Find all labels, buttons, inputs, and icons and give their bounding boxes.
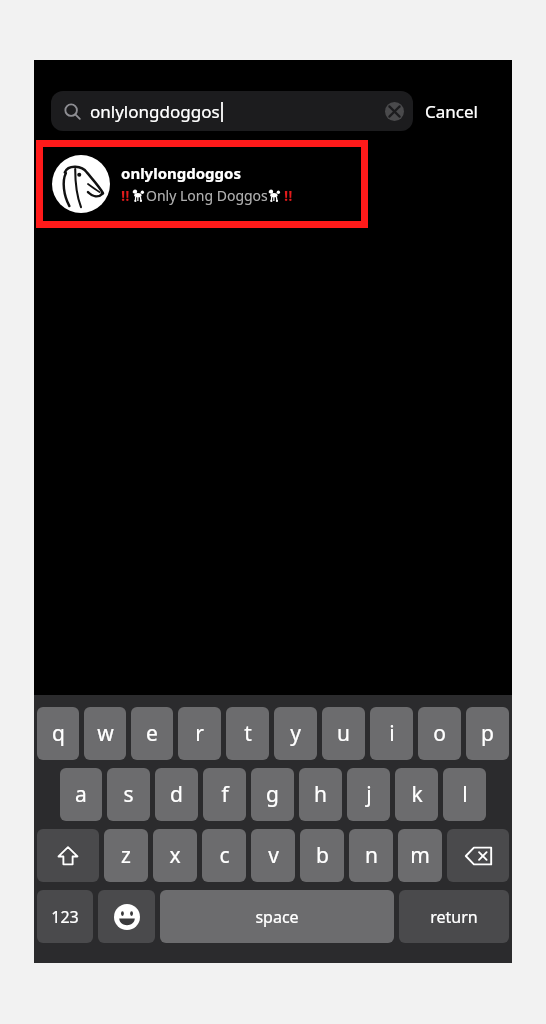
button[interactable]: v	[251, 829, 295, 882]
staticText: h	[314, 780, 327, 809]
staticText: d	[170, 780, 183, 809]
button[interactable]: c	[202, 829, 246, 882]
button[interactable]: s	[107, 768, 150, 821]
button[interactable]: f	[203, 768, 246, 821]
staticText: v	[268, 841, 279, 870]
staticText: Cancel	[425, 100, 478, 123]
staticText: s	[123, 780, 134, 809]
staticText: i	[389, 719, 395, 748]
button[interactable]: l	[443, 768, 486, 821]
staticText: j	[366, 780, 372, 809]
staticText: t	[244, 719, 252, 748]
button[interactable]: q	[37, 707, 79, 760]
staticText: f	[221, 780, 229, 809]
staticText: ‼	[121, 185, 130, 205]
button[interactable]: t	[226, 707, 269, 760]
staticText: n	[365, 841, 378, 870]
button[interactable]: Cancel	[425, 91, 478, 131]
staticText: x	[169, 841, 181, 870]
staticText: e	[146, 719, 158, 748]
staticText: w	[97, 719, 114, 748]
button[interactable]: x	[153, 829, 197, 882]
button[interactable]: Search	[51, 91, 413, 131]
staticText: l	[462, 780, 468, 809]
staticText: k	[411, 780, 423, 809]
button[interactable]: onlylongdoggos	[43, 147, 361, 221]
button[interactable]: b	[300, 829, 344, 882]
button[interactable]: e	[131, 707, 173, 760]
button[interactable]: u	[322, 707, 365, 760]
button[interactable]: k	[395, 768, 438, 821]
staticText: 123	[51, 906, 79, 928]
staticText: y	[290, 719, 301, 748]
staticText: onlylongdoggos	[121, 163, 241, 183]
staticText: c	[219, 841, 230, 870]
staticText: z	[121, 841, 131, 870]
button[interactable]: p	[466, 707, 509, 760]
staticText: Only Long Doggos	[146, 186, 268, 205]
button[interactable]: z	[104, 829, 148, 882]
staticText: onlylongdoggos	[90, 100, 220, 123]
staticText: m	[410, 841, 430, 870]
button[interactable]: d	[155, 768, 198, 821]
button[interactable]: m	[398, 829, 442, 882]
staticText: p	[481, 719, 494, 748]
button[interactable]: space	[160, 890, 394, 943]
button[interactable]: j	[347, 768, 390, 821]
staticText: g	[266, 780, 279, 809]
staticText: ‼	[284, 185, 293, 205]
staticText: return	[430, 906, 478, 928]
button[interactable]: return	[399, 890, 509, 943]
button[interactable]: Shift	[37, 829, 99, 882]
button[interactable]: Emoji keyboard	[98, 890, 155, 943]
staticText: o	[433, 719, 446, 748]
staticText: q	[52, 719, 65, 748]
other: Search	[64, 103, 81, 120]
button[interactable]: Backspace	[447, 829, 509, 882]
staticText: r	[195, 719, 204, 748]
button[interactable]: h	[299, 768, 342, 821]
button[interactable]: Clear text	[378, 95, 410, 127]
button[interactable]: o	[418, 707, 461, 760]
staticText: space	[255, 906, 299, 928]
button[interactable]: w	[84, 707, 126, 760]
button[interactable]: i	[370, 707, 413, 760]
button[interactable]: y	[274, 707, 317, 760]
staticText: b	[316, 841, 329, 870]
button[interactable]: g	[251, 768, 294, 821]
button[interactable]: n	[349, 829, 393, 882]
button[interactable]: 123	[37, 890, 93, 943]
staticText: a	[75, 780, 87, 809]
button[interactable]: r	[178, 707, 221, 760]
button[interactable]: a	[60, 768, 102, 821]
staticText: u	[337, 719, 350, 748]
